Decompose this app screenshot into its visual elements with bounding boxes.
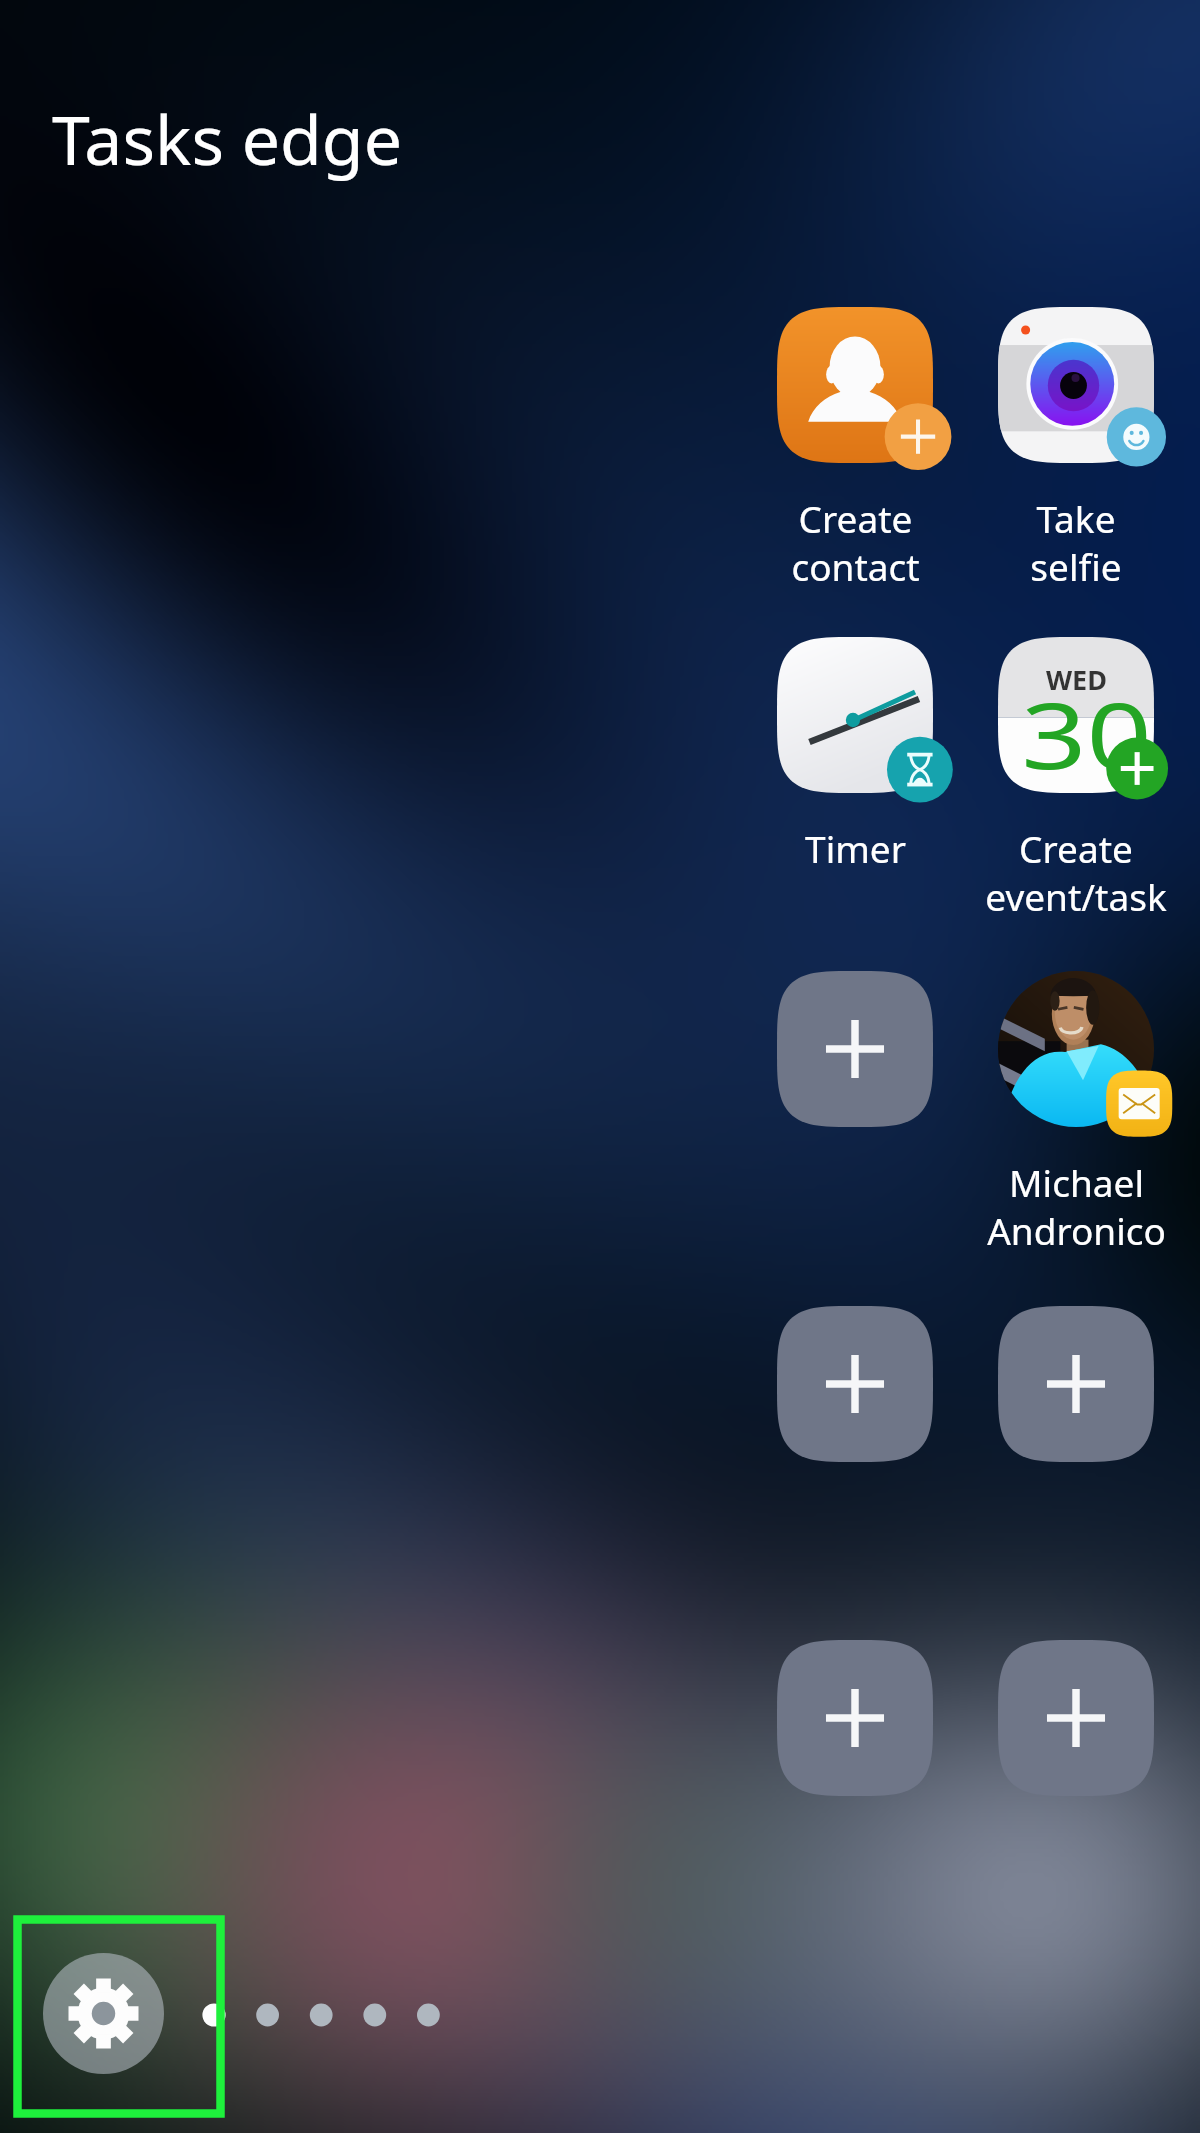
button[interactable]: Timer: [732, 637, 978, 2133]
staticText: Create event/task: [985, 823, 1167, 922]
staticText: Timer: [805, 823, 906, 873]
button[interactable]: Add shortcut: [732, 1640, 978, 2133]
button[interactable]: WED: [953, 637, 1199, 2133]
button[interactable]: Panel page indicator: [196, 1987, 464, 2043]
staticText: Create contact: [791, 493, 920, 592]
button[interactable]: Add shortcut: [953, 1640, 1199, 2133]
staticText: WED: [1046, 661, 1107, 698]
button[interactable]: Add shortcut: [953, 1306, 1199, 2133]
button[interactable]: Michael Andronico: [953, 971, 1199, 2133]
button[interactable]: Add shortcut: [732, 971, 978, 2133]
button[interactable]: Add shortcut: [732, 1306, 978, 2133]
button[interactable]: Settings: [43, 1953, 164, 2074]
staticText: Michael Andronico: [987, 1157, 1166, 1256]
staticText: Tasks edge: [52, 92, 402, 185]
button[interactable]: Create contact: [732, 307, 978, 2133]
button[interactable]: Take selfie: [953, 307, 1199, 2133]
staticText: 30: [1021, 671, 1153, 796]
staticText: Take selfie: [1030, 493, 1122, 592]
